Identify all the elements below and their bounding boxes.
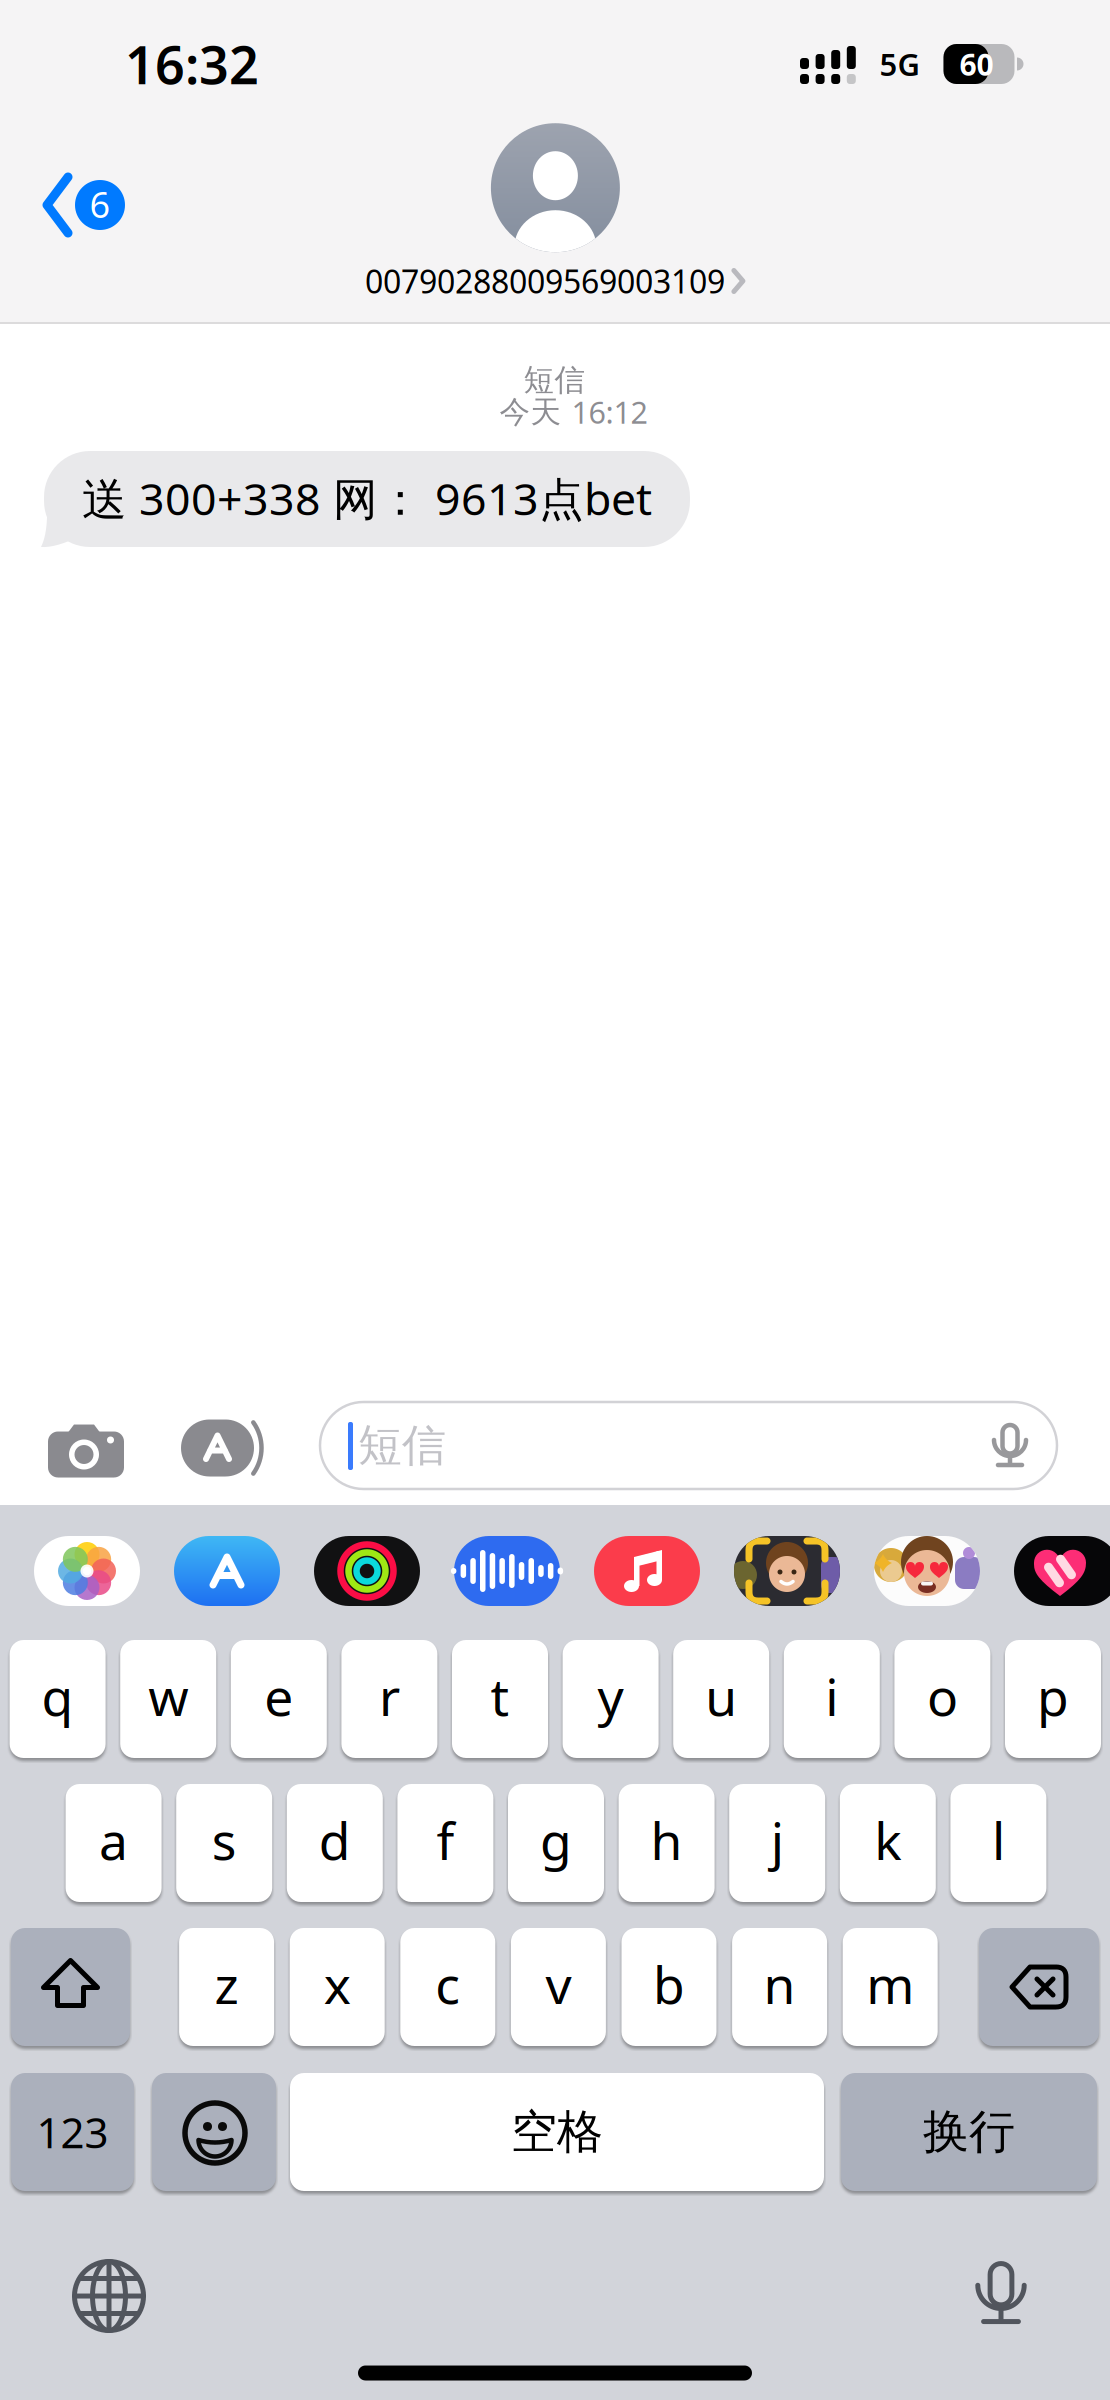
staticText: 换行	[923, 2103, 1015, 2161]
staticText: 送 300+338 网： 9613点bet	[82, 468, 652, 528]
staticText: r	[379, 1661, 400, 1731]
button[interactable]: Fitness	[314, 1536, 420, 1606]
button[interactable]: Music	[594, 1536, 700, 1606]
staticText: g	[540, 1805, 572, 1875]
staticText: i	[825, 1661, 838, 1731]
staticText: 短信	[523, 361, 585, 399]
button[interactable]: Dictation	[961, 2254, 1041, 2334]
button[interactable]: q	[10, 1640, 106, 1758]
staticText: j	[771, 1805, 784, 1875]
staticText: 6	[89, 179, 110, 228]
button[interactable]: Memoji stickers	[874, 1536, 980, 1606]
button[interactable]: Heart sticker	[1014, 1536, 1110, 1606]
button[interactable]: Apps	[181, 1419, 271, 1476]
button[interactable]: Emoji	[152, 2073, 276, 2191]
staticText: 空格	[511, 2103, 603, 2161]
staticText: k	[874, 1805, 901, 1875]
button[interactable]: s	[176, 1784, 272, 1902]
button[interactable]: Next keyboard	[69, 2256, 149, 2336]
button[interactable]: f	[397, 1784, 493, 1902]
button[interactable]: Space	[290, 2073, 824, 2191]
staticText: b	[653, 1949, 685, 2019]
staticText: x	[324, 1949, 351, 2019]
staticText: v	[545, 1949, 571, 2019]
button[interactable]: j	[729, 1784, 825, 1902]
staticText: 16:32	[125, 29, 259, 99]
staticText: 5G	[879, 43, 920, 85]
button[interactable]: i	[784, 1640, 880, 1758]
staticText: m	[866, 1949, 914, 2019]
button[interactable]: Return	[841, 2073, 1097, 2191]
button[interactable]: m	[843, 1928, 938, 2046]
staticText: w	[148, 1661, 188, 1731]
button[interactable]: w	[120, 1640, 216, 1758]
staticText: 16:12	[571, 391, 647, 433]
staticText: t	[490, 1661, 509, 1731]
button[interactable]: c	[400, 1928, 495, 2046]
button[interactable]: Contact 00790288009569003109	[365, 123, 746, 303]
button[interactable]: Memoji camera	[734, 1536, 840, 1606]
button[interactable]: Back	[42, 174, 132, 236]
staticText: e	[264, 1661, 293, 1731]
button[interactable]: n	[732, 1928, 827, 2046]
button[interactable]: o	[894, 1640, 990, 1758]
button[interactable]: Message text field	[320, 1402, 1057, 1489]
button[interactable]: a	[66, 1784, 162, 1902]
staticText: d	[319, 1805, 351, 1875]
staticText: q	[42, 1661, 74, 1731]
staticText: 60	[959, 44, 993, 84]
staticText: z	[215, 1949, 239, 2019]
button[interactable]: v	[511, 1928, 606, 2046]
button[interactable]: t	[452, 1640, 548, 1758]
button[interactable]: App Store	[174, 1536, 280, 1606]
staticText: h	[651, 1805, 683, 1875]
button[interactable]: d	[287, 1784, 383, 1902]
staticText: 00790288009569003109	[365, 259, 725, 303]
staticText: 123	[36, 2103, 108, 2161]
staticText: l	[992, 1805, 1005, 1875]
button[interactable]: b	[621, 1928, 716, 2046]
button[interactable]: p	[1005, 1640, 1101, 1758]
button[interactable]: k	[840, 1784, 936, 1902]
staticText: s	[212, 1805, 237, 1875]
staticText: 今天	[499, 393, 561, 431]
button[interactable]: Photos	[34, 1536, 140, 1606]
button[interactable]: Delete	[979, 1928, 1099, 2046]
staticText: 短信	[358, 1418, 446, 1473]
staticText: y	[598, 1661, 624, 1731]
staticText: a	[99, 1805, 128, 1875]
button[interactable]: Camera	[48, 1422, 124, 1477]
staticText: f	[436, 1805, 454, 1875]
button[interactable]: e	[231, 1640, 327, 1758]
button[interactable]: z	[179, 1928, 274, 2046]
staticText: c	[435, 1949, 460, 2019]
button[interactable]: g	[508, 1784, 604, 1902]
button[interactable]: Shift	[11, 1928, 130, 2046]
button[interactable]: y	[563, 1640, 659, 1758]
button[interactable]: Numbers	[11, 2073, 134, 2191]
staticText: o	[927, 1661, 958, 1731]
button[interactable]: r	[341, 1640, 437, 1758]
button[interactable]: Voice Memos	[451, 1536, 563, 1606]
button[interactable]: l	[950, 1784, 1046, 1902]
staticText: u	[705, 1661, 737, 1731]
button[interactable]: u	[673, 1640, 769, 1758]
staticText: p	[1037, 1661, 1069, 1731]
staticText: n	[764, 1949, 796, 2019]
button[interactable]: x	[290, 1928, 385, 2046]
button[interactable]: h	[619, 1784, 715, 1902]
